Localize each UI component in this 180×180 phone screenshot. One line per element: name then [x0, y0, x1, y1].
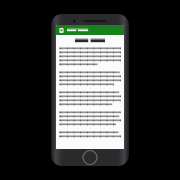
button[interactable]: Menu [58, 27, 65, 34]
button[interactable]: Menu [56, 25, 124, 35]
